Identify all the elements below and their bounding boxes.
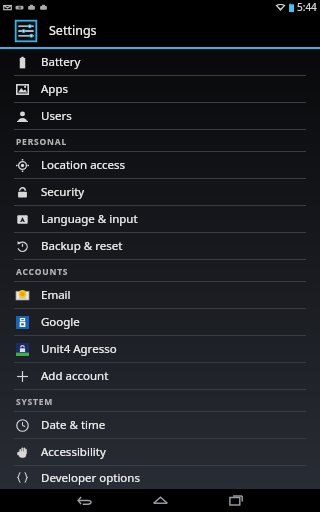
staticText: Backup & reset (41, 238, 123, 254)
staticText: Google (41, 314, 80, 330)
staticText: PERSONAL (16, 136, 67, 148)
button[interactable]: Accessibility (0, 439, 320, 465)
staticText: Unit4 Agresso (41, 341, 117, 357)
staticText: 5:44 (297, 0, 317, 14)
button[interactable]: Back (46, 489, 122, 512)
staticText: Language & input (41, 211, 138, 227)
button[interactable]: Users (0, 103, 320, 129)
staticText: ACCOUNTS (16, 266, 69, 278)
button[interactable]: Add account (0, 363, 320, 389)
staticText: Users (41, 108, 72, 124)
button[interactable]: Home (122, 489, 198, 512)
button[interactable]: Developer options (0, 466, 320, 489)
staticText: Security (41, 184, 85, 200)
staticText: Email (41, 287, 71, 303)
staticText: Accessibility (41, 444, 106, 460)
staticText: Developer options (41, 470, 140, 486)
button[interactable]: Apps (0, 76, 320, 102)
button[interactable]: Recent apps (198, 489, 274, 512)
staticText: Battery (41, 54, 81, 70)
button[interactable]: Location access (0, 152, 320, 178)
staticText: Settings (49, 22, 97, 39)
button[interactable]: Backup & reset (0, 233, 320, 259)
staticText: SYSTEM (16, 396, 54, 408)
staticText: Location access (41, 157, 126, 173)
staticText: Apps (41, 81, 69, 97)
button[interactable]: Battery (0, 49, 320, 75)
button[interactable]: Settings (0, 14, 320, 47)
staticText: Date & time (41, 417, 106, 433)
staticText: Add account (41, 368, 109, 384)
button[interactable]: Language & input (0, 206, 320, 232)
button[interactable]: Date & time (0, 412, 320, 438)
button[interactable]: Email (0, 282, 320, 308)
button[interactable]: Google (0, 309, 320, 335)
button[interactable]: Unit4 Agresso (0, 336, 320, 362)
button[interactable]: Security (0, 179, 320, 205)
